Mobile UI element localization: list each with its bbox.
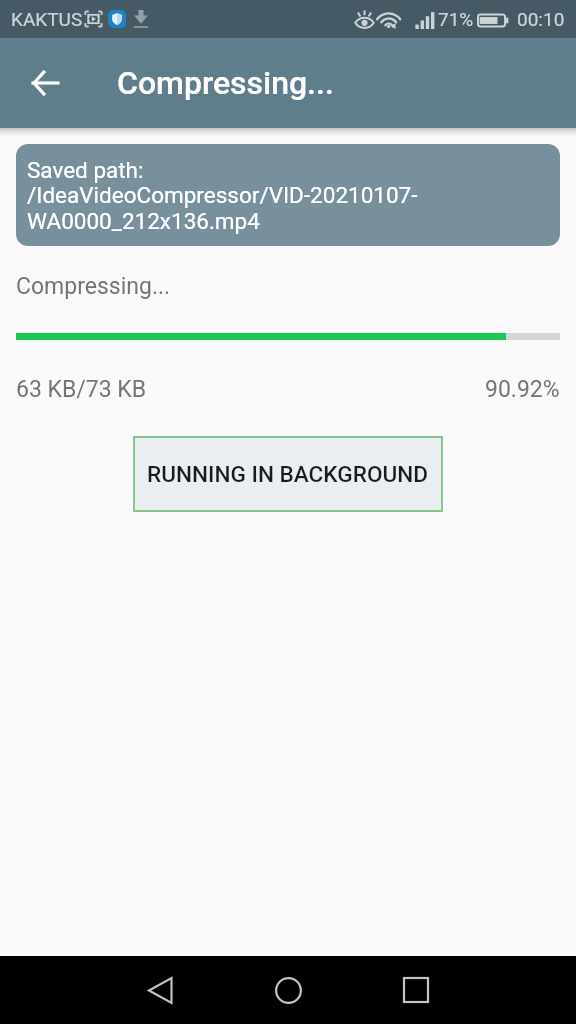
staticText: Compressing... [16, 273, 171, 300]
staticText: Saved path: /IdeaVideoCompressor/VID-202… [27, 157, 552, 235]
staticText: 00:10 [517, 8, 565, 30]
staticText: 63 KB/73 KB [16, 376, 147, 403]
button[interactable]: Back [132, 962, 188, 1018]
staticText: 71% [438, 8, 474, 30]
button[interactable]: Recents [388, 962, 444, 1018]
button[interactable]: Back [17, 55, 73, 111]
button[interactable]: RUNNING IN BACKGROUND [133, 436, 443, 512]
staticText: RUNNING IN BACKGROUND [147, 461, 429, 487]
button[interactable]: Home [260, 962, 316, 1018]
staticText: Compressing... [117, 64, 334, 102]
staticText: KAKTUS [11, 8, 83, 30]
staticText: 90.92% [485, 376, 560, 403]
button[interactable]: Saved path: /IdeaVideoCompressor/VID-202… [16, 144, 560, 246]
